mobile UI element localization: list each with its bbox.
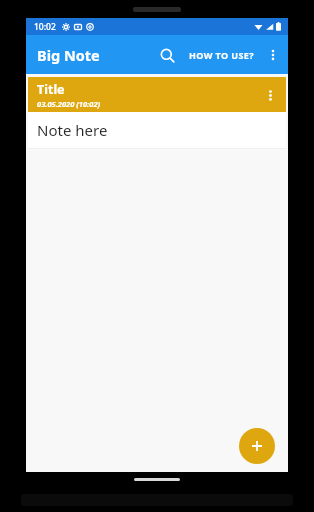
button[interactable]: More options [260, 42, 286, 68]
button[interactable]: Add note [239, 428, 275, 464]
staticText: Title [37, 81, 65, 98]
staticText: HOW TO USE? [189, 49, 254, 61]
button[interactable]: HOW TO USE? [183, 41, 260, 69]
staticText: 03.05.2020 (10:02) [37, 99, 101, 109]
staticText: Big Note [37, 45, 100, 65]
button[interactable]: Title [28, 77, 286, 150]
staticText: 10:02 [34, 21, 56, 33]
staticText: Note here [37, 120, 108, 140]
button[interactable]: Search [151, 39, 183, 71]
button[interactable]: Note options [258, 83, 282, 107]
